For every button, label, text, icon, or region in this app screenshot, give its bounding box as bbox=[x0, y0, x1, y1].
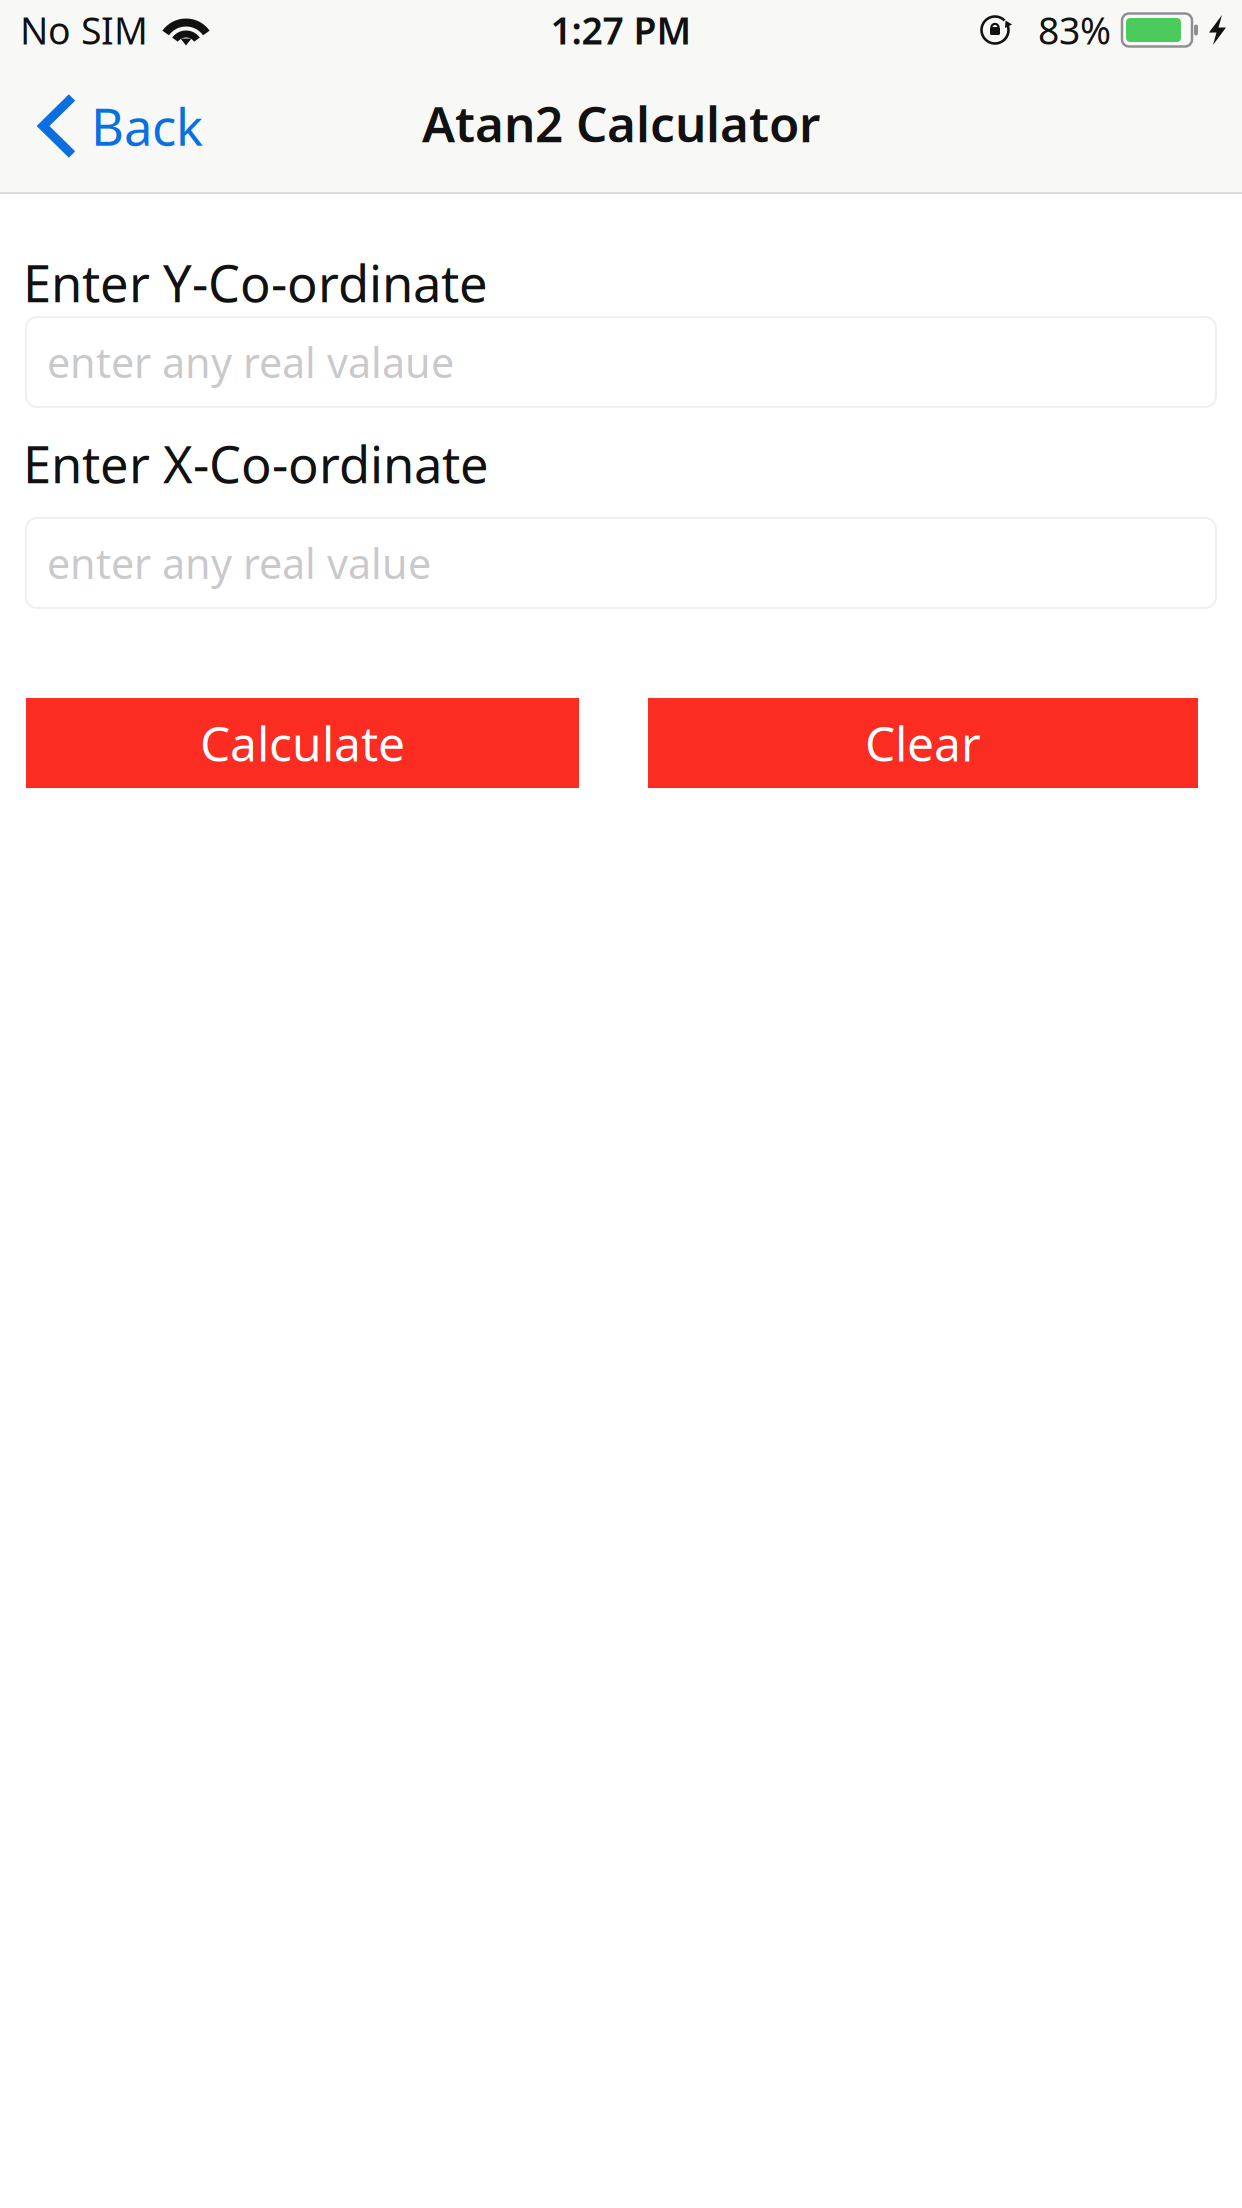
button[interactable]: Back bbox=[0, 60, 227, 192]
staticText: enter any real valaue bbox=[47, 335, 454, 389]
staticText: Enter Y-Co-ordinate bbox=[23, 249, 488, 316]
staticText: 1:27 PM bbox=[550, 5, 691, 55]
button[interactable]: Clear bbox=[648, 698, 1198, 788]
staticText: Clear bbox=[865, 711, 981, 775]
staticText: Enter X-Co-ordinate bbox=[23, 430, 489, 497]
staticText: Calculate bbox=[200, 711, 405, 775]
button[interactable]: Calculate bbox=[26, 698, 579, 788]
staticText: Atan2 Calculator bbox=[422, 90, 820, 156]
staticText: No SIM bbox=[20, 5, 148, 55]
staticText: enter any real value bbox=[47, 536, 431, 590]
staticText: 83% bbox=[1038, 5, 1111, 55]
staticText: Back bbox=[91, 92, 203, 160]
